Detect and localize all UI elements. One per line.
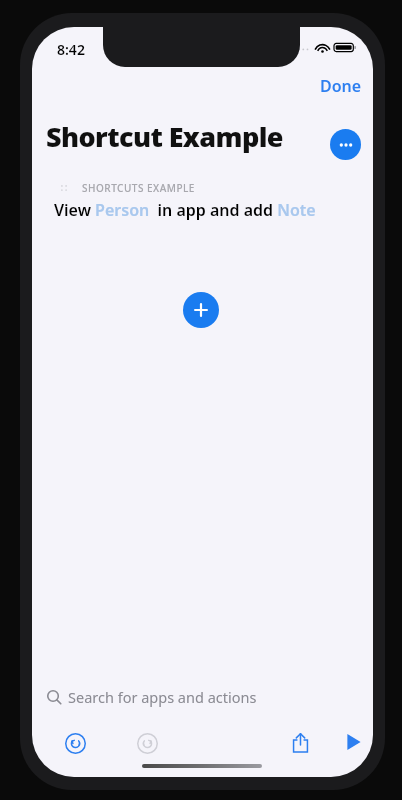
- button[interactable]: Add action: [183, 292, 219, 328]
- button[interactable]: Undo: [58, 726, 92, 760]
- staticText: 8:42: [57, 40, 85, 59]
- button[interactable]: View Person in app and add Note: [54, 199, 344, 221]
- button[interactable]: More options: [330, 129, 361, 160]
- staticText: View Person in app and add Note: [54, 199, 316, 221]
- button[interactable]: Redo: [130, 726, 164, 760]
- button[interactable]: Done: [312, 71, 370, 101]
- button[interactable]: Search for apps and actions: [46, 682, 326, 712]
- staticText: Done: [320, 75, 362, 97]
- button[interactable]: Run shortcut: [336, 725, 370, 759]
- staticText: Search for apps and actions: [68, 687, 257, 707]
- button[interactable]: Share: [283, 725, 317, 759]
- staticText: SHORTCUTS EXAMPLE: [82, 181, 195, 195]
- staticText: Shortcut Example: [46, 118, 283, 155]
